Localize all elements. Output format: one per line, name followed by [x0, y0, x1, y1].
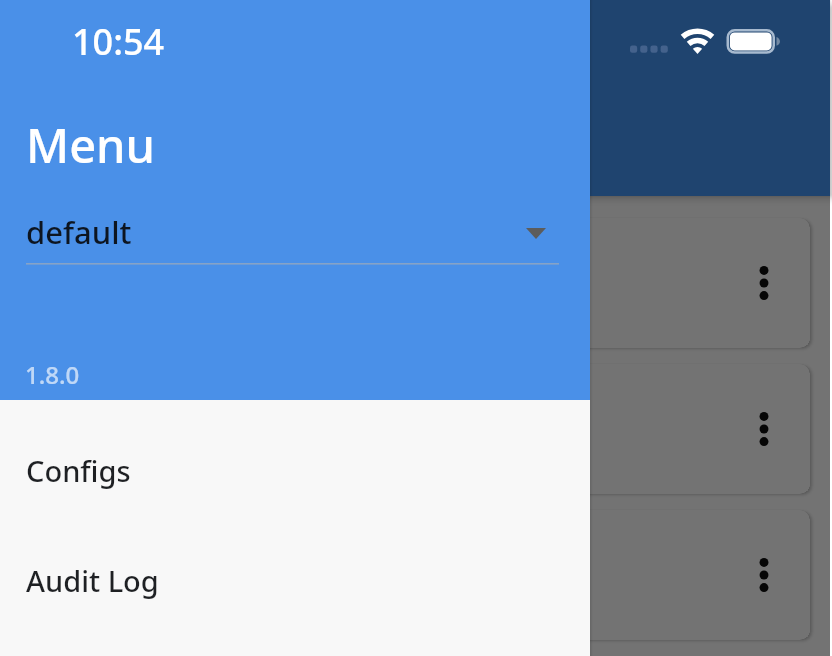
button[interactable]: More options: [746, 557, 782, 593]
button[interactable]: Audit Log: [0, 525, 590, 635]
button[interactable]: More options: [746, 265, 782, 301]
button[interactable]: Configs: [0, 415, 590, 525]
button[interactable]: More options: [746, 411, 782, 447]
staticText: 10:54: [72, 17, 165, 66]
staticText: default: [26, 211, 132, 253]
staticText: Audit Log: [26, 561, 159, 600]
button[interactable]: More options: [22, 364, 810, 494]
staticText: Configs: [26, 451, 131, 490]
staticText: Menu: [26, 113, 156, 177]
button[interactable]: default: [0, 210, 590, 266]
button[interactable]: More options: [22, 218, 810, 348]
button[interactable]: Close navigation drawer: [0, 0, 830, 656]
staticText: 1.8.0: [25, 358, 80, 391]
button[interactable]: More options: [22, 510, 810, 640]
